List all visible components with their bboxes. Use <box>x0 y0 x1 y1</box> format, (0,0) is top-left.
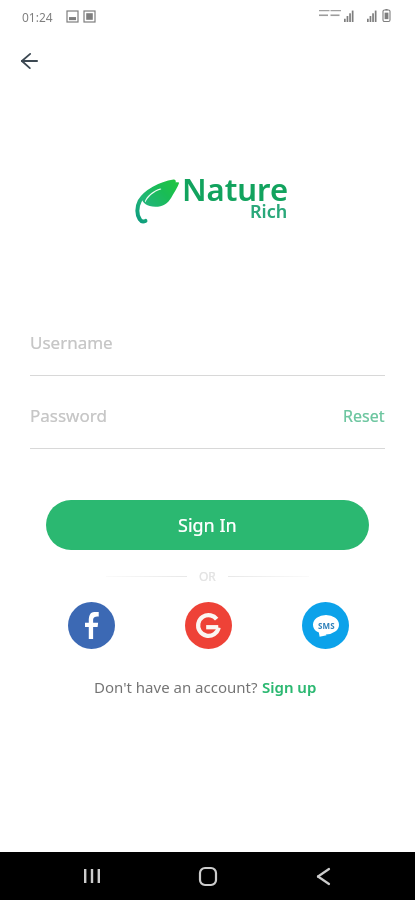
button[interactable]: Sign in with Google <box>185 602 232 649</box>
staticText: OR <box>199 568 216 584</box>
button[interactable]: Sign In <box>46 500 369 550</box>
staticText: Don't have an account? <box>94 677 262 697</box>
staticText: Reset <box>343 405 385 427</box>
button[interactable]: Sign in with Facebook <box>68 602 115 649</box>
button[interactable]: Back <box>299 852 347 900</box>
staticText: Username <box>30 331 113 354</box>
button[interactable]: Sign in with SMS <box>302 602 349 649</box>
button[interactable]: Sign up <box>262 677 317 697</box>
button[interactable]: Home <box>184 852 232 900</box>
staticText: 01:24 <box>22 9 53 25</box>
staticText: Sign In <box>178 513 237 538</box>
staticText: Sign up <box>262 677 317 697</box>
button[interactable]: Reset <box>343 405 385 427</box>
staticText: Rich <box>250 199 288 224</box>
staticText: Nature <box>182 168 289 210</box>
button[interactable]: Back <box>7 38 52 83</box>
button[interactable]: Recents <box>68 852 116 900</box>
staticText: Password <box>30 404 107 427</box>
staticText: SMS <box>318 620 335 631</box>
